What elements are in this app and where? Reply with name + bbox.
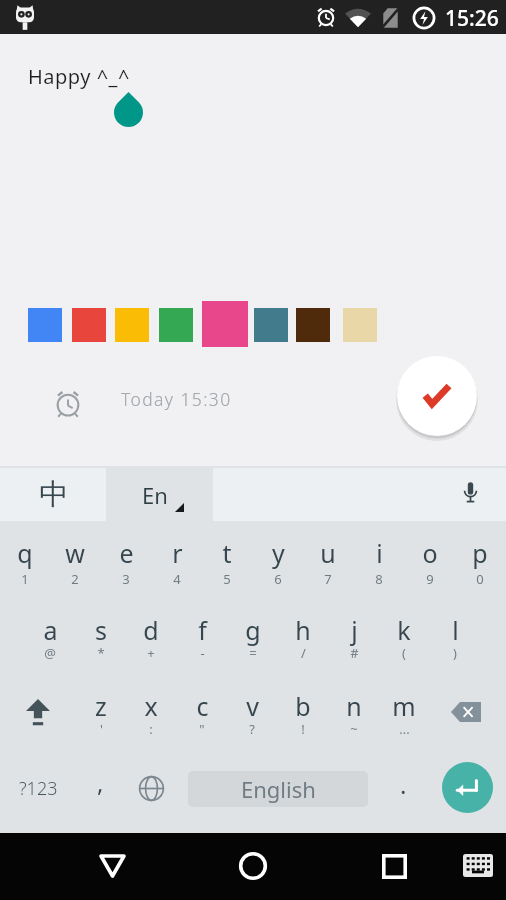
staticText: i	[376, 536, 383, 570]
button[interactable]	[369, 841, 419, 891]
button[interactable]	[397, 356, 477, 436]
staticText: ,	[97, 766, 104, 799]
button[interactable]: 中	[0, 468, 106, 521]
staticText: '	[100, 720, 103, 738]
staticText: 8	[375, 570, 383, 588]
button[interactable]: q	[0, 530, 50, 588]
staticText: b	[295, 689, 311, 723]
staticText: j	[351, 613, 358, 647]
button[interactable]: t	[202, 530, 252, 588]
button[interactable]: a	[25, 607, 75, 665]
button[interactable]: x	[126, 683, 176, 741]
staticText: 1	[21, 570, 29, 588]
button[interactable]	[87, 841, 137, 891]
staticText: e	[119, 536, 134, 570]
staticText: u	[320, 536, 336, 570]
button[interactable]: u	[303, 530, 353, 588]
button[interactable]: j	[329, 607, 379, 665]
button[interactable]: b	[278, 683, 328, 741]
staticText: /	[301, 644, 306, 662]
staticText: z	[95, 689, 107, 723]
button[interactable]	[441, 683, 491, 741]
staticText: c	[196, 689, 209, 723]
staticText: 5	[223, 570, 231, 588]
button[interactable]: v	[227, 683, 277, 741]
button[interactable]: h	[278, 607, 328, 665]
staticText: x	[144, 689, 158, 723]
button[interactable]	[228, 841, 278, 891]
staticText: l	[452, 613, 459, 647]
staticText: Today 15:30	[121, 387, 232, 411]
button[interactable]	[213, 468, 506, 521]
staticText: -	[200, 644, 205, 662]
staticText: y	[272, 536, 285, 570]
button[interactable]: .	[379, 761, 427, 816]
button[interactable]: l	[430, 607, 480, 665]
button[interactable]: English	[188, 771, 368, 807]
staticText: s	[95, 613, 107, 647]
staticText: p	[472, 536, 488, 570]
button[interactable]: s	[76, 607, 126, 665]
staticText: 7	[324, 570, 332, 588]
staticText: f	[198, 613, 207, 647]
staticText: 2	[71, 570, 79, 588]
staticText: =	[249, 644, 257, 662]
button[interactable]: e	[101, 530, 151, 588]
staticText: a	[43, 613, 58, 647]
button[interactable]: n	[329, 683, 379, 741]
staticText: r	[172, 536, 183, 570]
staticText: 0	[476, 570, 484, 588]
staticText: 15:26	[445, 4, 499, 33]
staticText: +	[147, 644, 155, 662]
staticText: q	[17, 536, 33, 570]
button[interactable]: En	[106, 468, 213, 521]
staticText: w	[65, 536, 85, 570]
staticText: v	[246, 689, 259, 723]
button[interactable]: w	[50, 530, 100, 588]
staticText: :	[149, 720, 153, 738]
staticText: *	[97, 644, 105, 662]
staticText: @	[44, 644, 56, 662]
staticText: k	[397, 613, 411, 647]
button[interactable]: ,	[76, 761, 124, 816]
button[interactable]: z	[76, 683, 126, 741]
staticText: o	[422, 536, 438, 570]
button[interactable]: m	[379, 683, 429, 741]
button[interactable]: o	[405, 530, 455, 588]
button[interactable]	[13, 683, 63, 741]
staticText: ?123	[19, 776, 58, 801]
staticText: 6	[274, 570, 282, 588]
staticText: !	[301, 720, 305, 738]
staticText: t	[222, 536, 232, 570]
staticText: m	[392, 689, 416, 723]
button[interactable]: f	[177, 607, 227, 665]
button[interactable]	[126, 761, 176, 816]
staticText: g	[245, 613, 261, 647]
staticText: .	[400, 768, 407, 801]
button[interactable]: r	[152, 530, 202, 588]
staticText: ?	[249, 720, 255, 738]
button[interactable]: Today 15:30	[40, 376, 300, 432]
button[interactable]: g	[228, 607, 278, 665]
staticText: d	[143, 613, 159, 647]
button[interactable]: y	[253, 530, 303, 588]
button[interactable]: c	[177, 683, 227, 741]
staticText: Happy ^_^	[28, 63, 130, 90]
button[interactable]: d	[126, 607, 176, 665]
button[interactable]: i	[354, 530, 404, 588]
button[interactable]: k	[379, 607, 429, 665]
button[interactable]	[456, 843, 500, 887]
button[interactable]	[442, 762, 493, 813]
button[interactable]: ?123	[8, 761, 68, 816]
staticText: "	[199, 720, 205, 738]
button[interactable]: p	[455, 530, 505, 588]
staticText: 3	[122, 570, 130, 588]
